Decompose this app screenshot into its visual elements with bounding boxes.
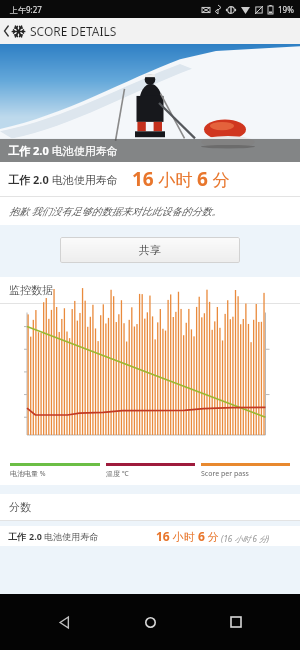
staticText: 2.0 xyxy=(33,172,49,187)
button[interactable]: Back xyxy=(42,600,86,644)
button[interactable]: Back xyxy=(0,18,12,44)
button[interactable]: 工作 xyxy=(8,526,292,546)
staticText: 19% xyxy=(278,4,294,15)
staticText: 6 xyxy=(197,166,208,192)
staticText: 16 xyxy=(132,166,154,192)
button[interactable]: Recents xyxy=(214,600,258,644)
staticText: 共享 xyxy=(139,243,161,257)
staticText: 抱歉 我们没有足够的数据来对比此设备的分数。 xyxy=(9,204,222,218)
staticText: 分 xyxy=(208,168,230,191)
staticText: 分数 xyxy=(9,500,31,514)
staticText: 监控数据 xyxy=(9,283,53,297)
staticText: 小时 xyxy=(170,529,198,544)
staticText: 温度 ℃ xyxy=(106,469,129,479)
staticText: 工作 xyxy=(8,172,33,187)
staticText: 小时 xyxy=(154,168,197,191)
staticText: 工作 xyxy=(8,530,29,542)
staticText: 2.0 xyxy=(33,143,49,158)
staticText: Score per pass xyxy=(201,469,249,479)
staticText: 电池使用寿命 xyxy=(49,172,118,187)
button[interactable]: Home xyxy=(128,600,172,644)
staticText: (16 小时 6 分) xyxy=(219,533,270,544)
staticText: 分 xyxy=(205,529,219,544)
staticText: 上午9:27 xyxy=(10,4,42,15)
staticText: 16 xyxy=(156,528,170,544)
staticText: 电池电量 % xyxy=(10,469,46,479)
staticText: 电池使用寿命 xyxy=(49,143,118,158)
staticText: 电池使用寿命 xyxy=(42,530,99,542)
staticText: 2.0 xyxy=(29,530,42,542)
button[interactable]: 共享 xyxy=(60,237,240,263)
staticText: 6 xyxy=(198,528,205,544)
staticText: SCORE DETAILS xyxy=(30,23,117,39)
staticText: 工作 xyxy=(8,143,33,158)
